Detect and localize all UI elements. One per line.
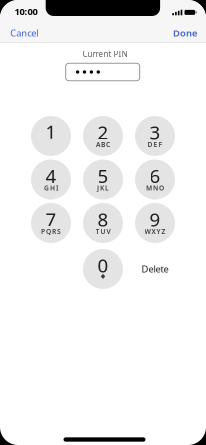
button[interactable]: 2 (83, 116, 123, 156)
button[interactable]: 8 (83, 203, 123, 243)
staticText: 10:00 (14, 5, 37, 18)
staticText: 0 (97, 253, 108, 278)
button[interactable]: Done (161, 23, 197, 43)
staticText: 2 (97, 120, 108, 145)
staticText: Cancel (10, 27, 38, 39)
button[interactable]: 6 (135, 159, 175, 199)
staticText: ABC (96, 140, 110, 149)
button[interactable]: 0 (83, 249, 123, 289)
button[interactable]: 4 (31, 159, 71, 199)
staticText: Delete (141, 263, 168, 275)
staticText: TUV (95, 227, 110, 236)
staticText: 8 (97, 207, 108, 232)
button[interactable]: 7 (31, 203, 71, 243)
staticText: 3 (149, 120, 160, 145)
staticText: 6 (149, 163, 160, 188)
staticText: PQRS (41, 227, 61, 236)
staticText: GHI (44, 183, 58, 192)
button[interactable]: Cancel (10, 23, 54, 43)
staticText: 5 (97, 163, 108, 188)
staticText: JKL (97, 183, 109, 192)
button[interactable]: 5 (83, 159, 123, 199)
staticText: Done (173, 27, 197, 39)
staticText: 4 (45, 163, 56, 188)
button[interactable]: Delete (129, 249, 181, 289)
button[interactable]: 3 (135, 116, 175, 156)
staticText: MNO (146, 183, 164, 192)
staticText: Current PIN (82, 49, 127, 59)
button[interactable]: 9 (135, 203, 175, 243)
staticText: DEF (147, 140, 162, 149)
button[interactable]: 1 (31, 116, 71, 156)
staticText: 1 (45, 119, 56, 144)
staticText: 9 (149, 207, 160, 232)
staticText: 7 (45, 207, 56, 232)
staticText: WXYZ (144, 227, 165, 236)
